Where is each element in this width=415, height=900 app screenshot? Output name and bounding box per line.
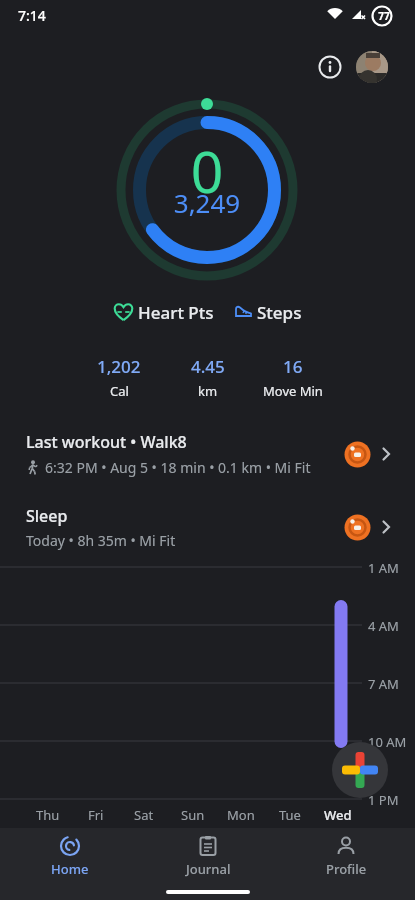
staticText: 4.45 bbox=[191, 355, 225, 378]
staticText: Heart Pts bbox=[138, 301, 214, 324]
button[interactable] bbox=[332, 742, 388, 798]
staticText: 7 AM bbox=[368, 675, 399, 693]
button[interactable]: 16 bbox=[233, 355, 353, 400]
staticText: 1 AM bbox=[368, 559, 399, 577]
staticText: Home bbox=[51, 860, 89, 878]
staticText: Sat bbox=[134, 806, 154, 824]
staticText: 6:32 PM • Aug 5 • 18 min • 0.1 km • Mi F… bbox=[45, 458, 311, 477]
staticText: Mon bbox=[227, 806, 255, 824]
staticText: Cal bbox=[110, 382, 129, 400]
staticText: 10 AM bbox=[368, 733, 407, 751]
button[interactable]: Home bbox=[0, 828, 139, 900]
button[interactable] bbox=[316, 53, 344, 81]
button[interactable]: Last workout • Walk8 bbox=[0, 426, 415, 482]
staticText: Sun bbox=[181, 806, 205, 824]
button[interactable]: 4.45 bbox=[148, 355, 268, 400]
staticText: 4 AM bbox=[368, 617, 399, 635]
staticText: 1 PM bbox=[368, 791, 399, 809]
button[interactable]: Steps bbox=[234, 301, 302, 324]
button[interactable]: 1,202 bbox=[59, 355, 179, 400]
staticText: Wed bbox=[324, 806, 352, 824]
staticText: Fri bbox=[88, 806, 104, 824]
staticText: Tue bbox=[279, 806, 301, 824]
button[interactable]: Sleep bbox=[0, 500, 415, 554]
staticText: 77 bbox=[375, 9, 393, 23]
staticText: 16 bbox=[283, 355, 303, 378]
staticText: Journal bbox=[186, 860, 231, 878]
button[interactable]: Journal bbox=[139, 828, 277, 900]
staticText: Today • 8h 35m • Mi Fit bbox=[26, 531, 176, 550]
staticText: km bbox=[198, 382, 218, 400]
staticText: Move Min bbox=[263, 382, 323, 400]
staticText: Last workout • Walk8 bbox=[26, 431, 187, 453]
button[interactable]: Profile bbox=[277, 828, 415, 900]
staticText: Profile bbox=[326, 860, 367, 878]
staticText: 3,249 bbox=[107, 185, 307, 220]
staticText: 0 bbox=[107, 132, 307, 210]
staticText: Sleep bbox=[26, 505, 68, 527]
staticText: Thu bbox=[36, 806, 60, 824]
staticText: 7:14 bbox=[18, 6, 46, 25]
button[interactable] bbox=[356, 51, 388, 83]
staticText: Steps bbox=[257, 301, 302, 324]
staticText: 1,202 bbox=[97, 355, 141, 378]
button[interactable]: Heart Pts bbox=[113, 301, 214, 324]
